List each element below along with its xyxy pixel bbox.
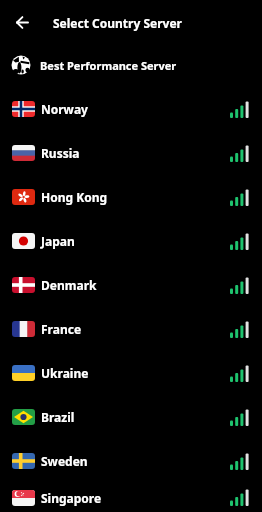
button[interactable]: Singapore [0,483,262,512]
button[interactable]: Norway [0,87,262,131]
button[interactable]: Russia [0,131,262,175]
button[interactable]: Brazil [0,395,262,439]
staticText: Brazil [41,409,75,425]
staticText: Russia [41,145,80,161]
button[interactable]: Ukraine [0,351,262,395]
button[interactable] [8,8,36,36]
staticText: France [41,321,82,337]
button[interactable]: Japan [0,219,262,263]
staticText: Ukraine [41,365,89,381]
staticText: Japan [41,233,75,249]
staticText: Hong Kong [41,189,108,205]
staticText: Select Country Server [53,15,182,31]
staticText: Denmark [41,277,97,293]
button[interactable]: Best Performance Server [0,43,262,87]
button[interactable]: Hong Kong [0,175,262,219]
button[interactable]: Sweden [0,439,262,483]
button[interactable]: Denmark [0,263,262,307]
staticText: Norway [41,101,88,117]
staticText: Sweden [41,453,88,469]
button[interactable]: France [0,307,262,351]
staticText: Best Performance Server [40,58,177,73]
staticText: Singapore [41,490,102,506]
